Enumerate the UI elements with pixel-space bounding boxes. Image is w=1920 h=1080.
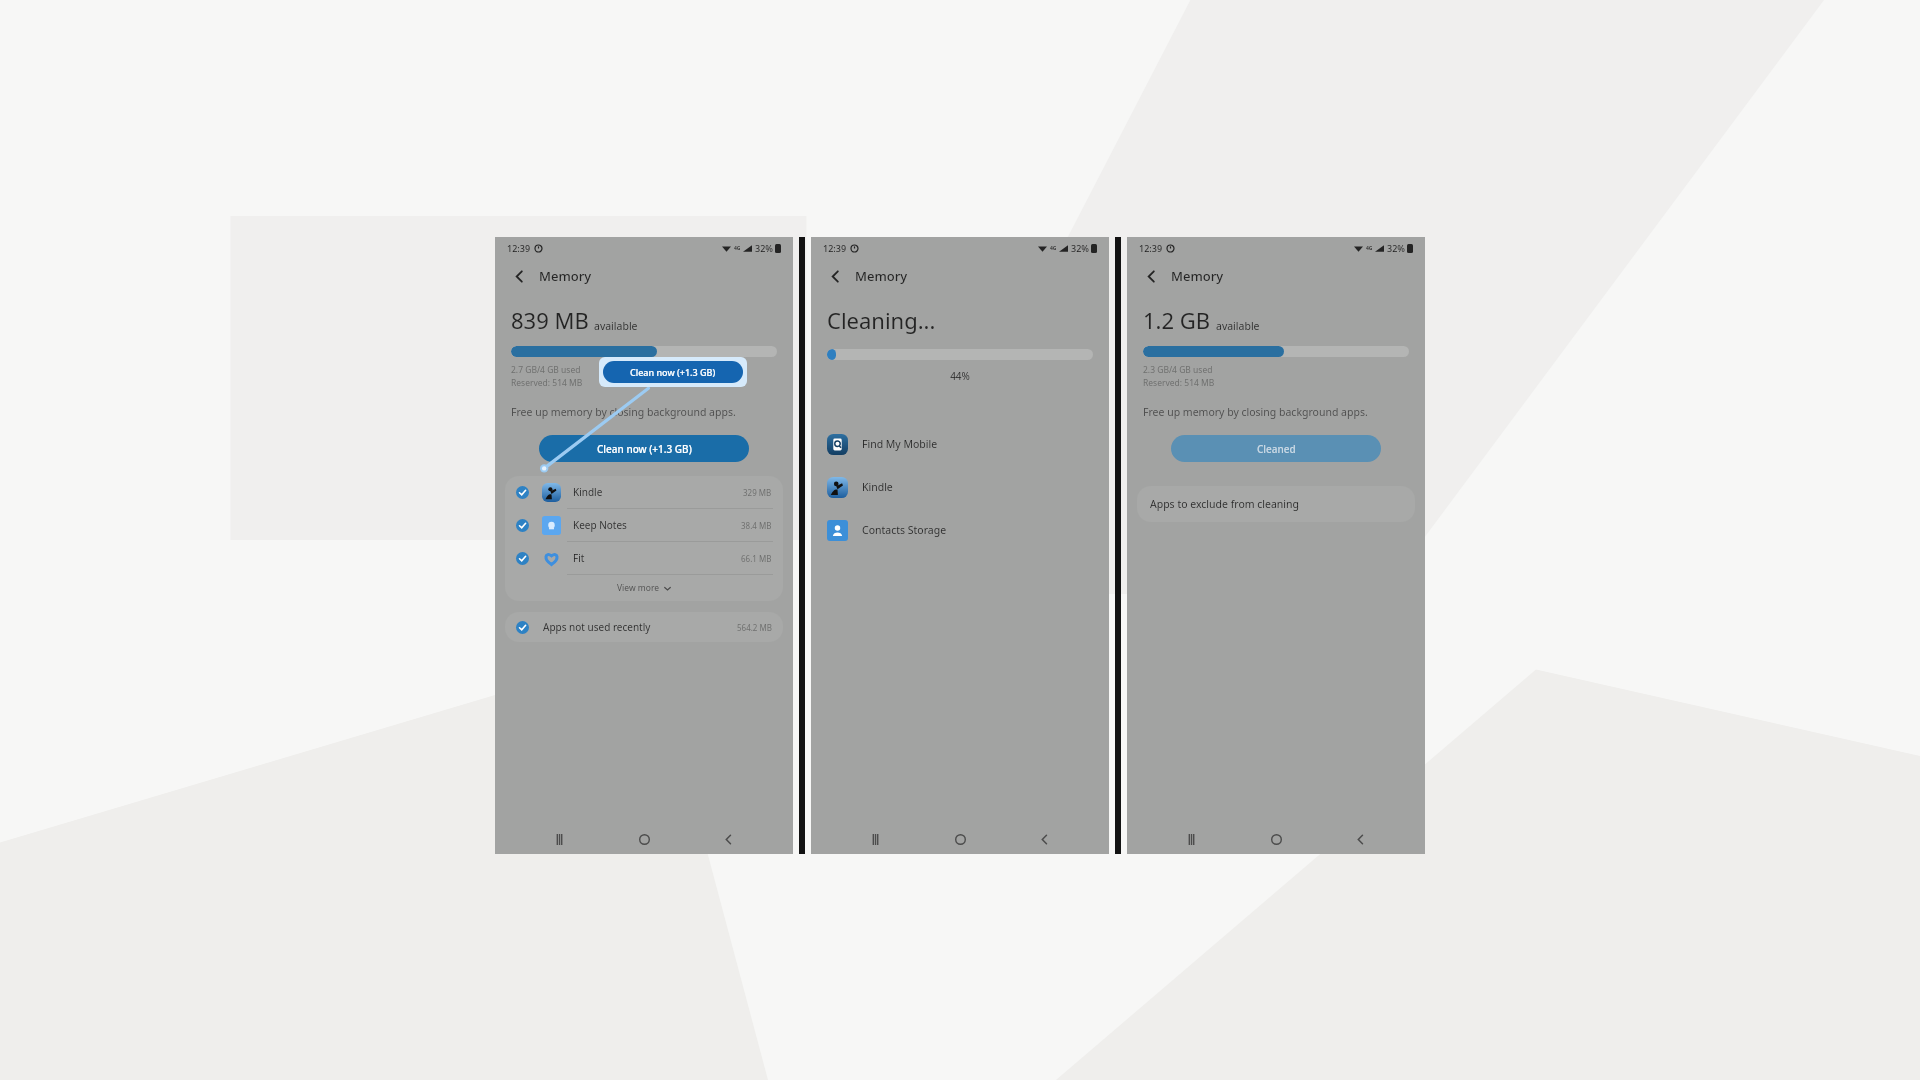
button[interactable]: Kindle: [827, 474, 1093, 500]
button[interactable]: View more: [505, 575, 783, 601]
staticText: Apps to exclude from cleaning: [1150, 497, 1300, 511]
button[interactable]: Back: [1140, 265, 1162, 287]
button[interactable]: Home: [942, 824, 978, 854]
button[interactable]: Home: [1258, 824, 1294, 854]
staticText: Memory: [539, 267, 592, 285]
staticText: Free up memory by closing background app…: [511, 405, 777, 419]
button[interactable]: Recents: [859, 824, 895, 854]
staticText: Reserved: 514 MB: [1143, 377, 1215, 389]
staticText: Clean now (+1.3 GB): [630, 366, 716, 378]
staticText: 564.2 MB: [737, 622, 772, 633]
staticText: 12:39: [823, 242, 847, 254]
staticText: 32%: [1387, 242, 1405, 254]
button[interactable]: Contacts Storage: [827, 517, 1093, 543]
staticText: 66.1 MB: [741, 553, 772, 564]
button[interactable]: Kindle: [516, 476, 772, 508]
staticText: Cleaning...: [827, 305, 936, 335]
staticText: View more: [617, 582, 660, 594]
staticText: Clean now (+1.3 GB): [597, 442, 692, 456]
button[interactable]: Apps to exclude from cleaning: [1150, 486, 1402, 522]
staticText: Apps not used recently: [543, 620, 651, 634]
staticText: Free up memory by closing background app…: [1143, 405, 1409, 419]
staticText: 32%: [1071, 242, 1089, 254]
staticText: available: [594, 319, 638, 333]
staticText: 1.2 GB: [1143, 305, 1211, 335]
staticText: 839 MB: [511, 305, 589, 335]
button[interactable]: Back: [710, 824, 746, 854]
button[interactable]: Fit: [516, 542, 772, 574]
button[interactable]: Recents: [543, 824, 579, 854]
button[interactable]: Back: [508, 265, 530, 287]
staticText: 4G: [734, 245, 741, 252]
staticText: Kindle: [862, 480, 893, 494]
button[interactable]: Keep Notes: [516, 509, 772, 541]
staticText: Memory: [855, 267, 908, 285]
staticText: Kindle: [573, 485, 603, 499]
button[interactable]: Clean now (+1.3 GB): [539, 435, 749, 462]
staticText: Contacts Storage: [862, 523, 947, 537]
button[interactable]: Home: [626, 824, 662, 854]
staticText: 44%: [827, 369, 1093, 383]
button[interactable]: Recents: [1175, 824, 1211, 854]
button[interactable]: Find My Mobile: [827, 431, 1093, 457]
staticText: 38.4 MB: [741, 520, 772, 531]
staticText: 2.3 GB/4 GB used: [1143, 364, 1213, 376]
staticText: Memory: [1171, 267, 1224, 285]
staticText: 12:39: [1139, 242, 1163, 254]
staticText: Reserved: 514 MB: [511, 377, 583, 389]
button[interactable]: Back: [1026, 824, 1062, 854]
button[interactable]: Clean now (+1.3 GB): [603, 361, 743, 383]
staticText: Fit: [573, 551, 585, 565]
staticText: 2.7 GB/4 GB used: [511, 364, 581, 376]
staticText: Find My Mobile: [862, 437, 938, 451]
button[interactable]: Cleaned: [1171, 435, 1381, 462]
staticText: 4G: [1050, 245, 1057, 252]
button[interactable]: Apps not used recently: [516, 612, 772, 642]
staticText: available: [1216, 319, 1260, 333]
staticText: 329 MB: [743, 487, 772, 498]
staticText: 12:39: [507, 242, 531, 254]
staticText: Keep Notes: [573, 518, 627, 532]
staticText: Cleaned: [1257, 442, 1296, 456]
staticText: 4G: [1366, 245, 1373, 252]
staticText: 32%: [755, 242, 773, 254]
button[interactable]: Back: [1342, 824, 1378, 854]
button[interactable]: Back: [824, 265, 846, 287]
